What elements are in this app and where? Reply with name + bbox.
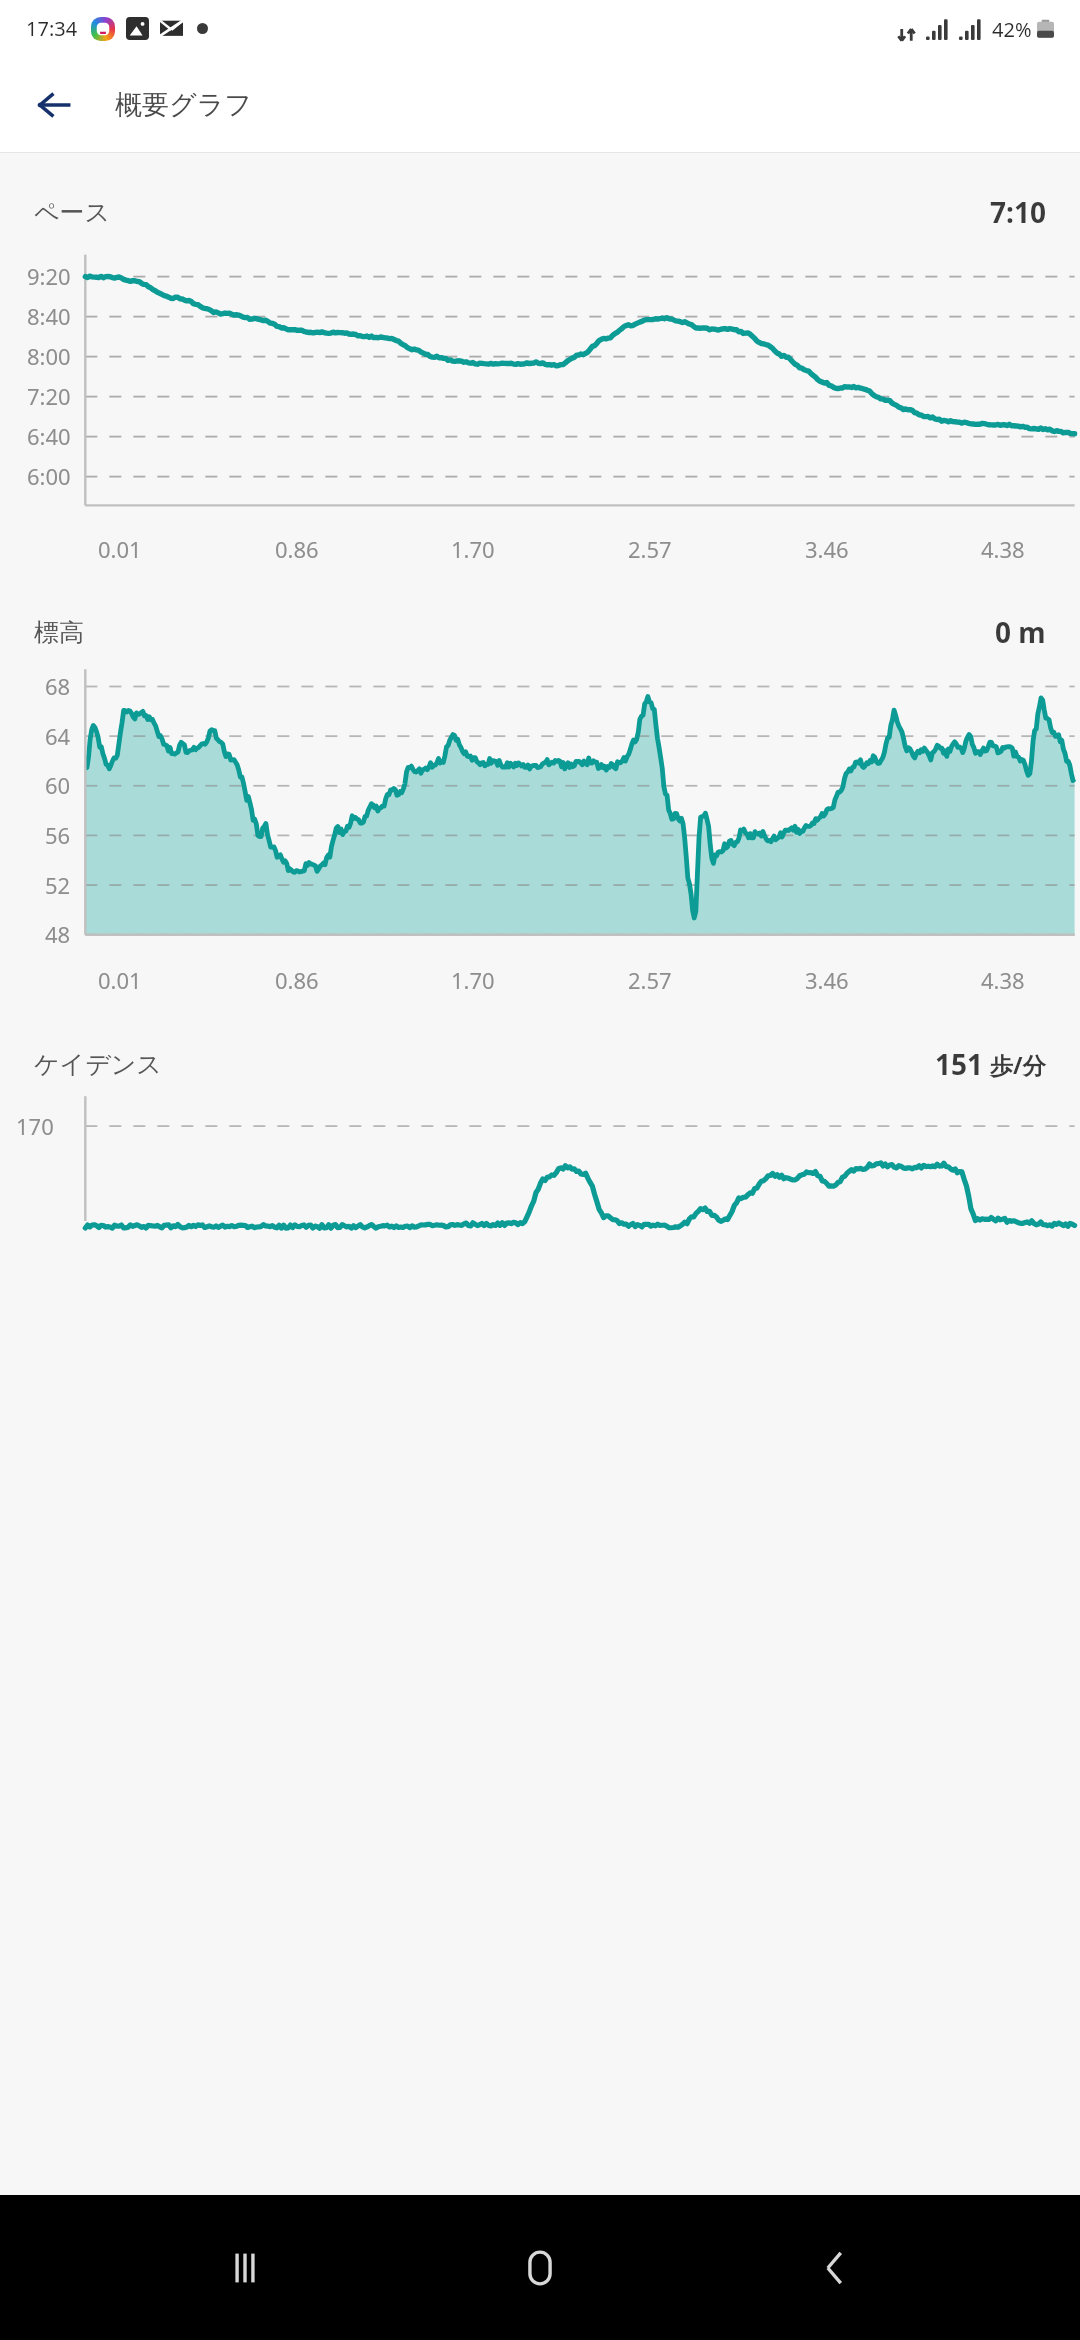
staticText: ケイデンス [34,1049,162,1080]
staticText: 2.57 [628,534,672,564]
staticText: 56 [45,820,71,850]
button[interactable]: 戻る [785,2218,885,2318]
staticText: 48 [45,919,71,949]
button[interactable]: ケイデンス [0,1039,1080,1089]
staticText: 歩/分 [984,1049,1046,1080]
staticText: 151 [935,1045,984,1083]
staticText: 8:00 [27,341,71,371]
staticText: 標高 [34,617,84,648]
staticText: 0.86 [275,965,319,995]
staticText: 7:20 [27,381,71,411]
staticText: 0.01 [98,965,142,995]
staticText: ペース [34,197,111,228]
staticText: 64 [45,721,71,751]
staticText: 1.70 [451,965,495,995]
staticText: 4.38 [981,965,1025,995]
staticText: 170 [16,1111,54,1141]
staticText: 60 [45,770,71,800]
staticText: 3.46 [805,965,849,995]
staticText: 6:00 [27,461,71,491]
button[interactable]: 戻る [24,75,84,135]
staticText: 42% [992,16,1032,43]
staticText: 3.46 [805,534,849,564]
staticText: 1.70 [451,534,495,564]
staticText: 0 m [995,613,1046,651]
staticText: 68 [45,671,71,701]
staticText: 8:40 [27,301,71,331]
staticText: 17:34 [26,15,78,42]
staticText: 4.38 [981,534,1025,564]
button[interactable]: 最近のアプリ [195,2218,295,2318]
button[interactable]: 標高 [0,607,1080,657]
button[interactable]: ホーム [490,2218,590,2318]
staticText: 0.86 [275,534,319,564]
staticText: 7:10 [990,193,1046,231]
staticText: 概要グラフ [115,88,252,122]
staticText: 6:40 [27,421,71,451]
staticText: 0.01 [98,534,142,564]
staticText: 9:20 [27,261,71,291]
staticText: 52 [45,870,71,900]
button[interactable]: ペース [0,187,1080,237]
staticText: 2.57 [628,965,672,995]
